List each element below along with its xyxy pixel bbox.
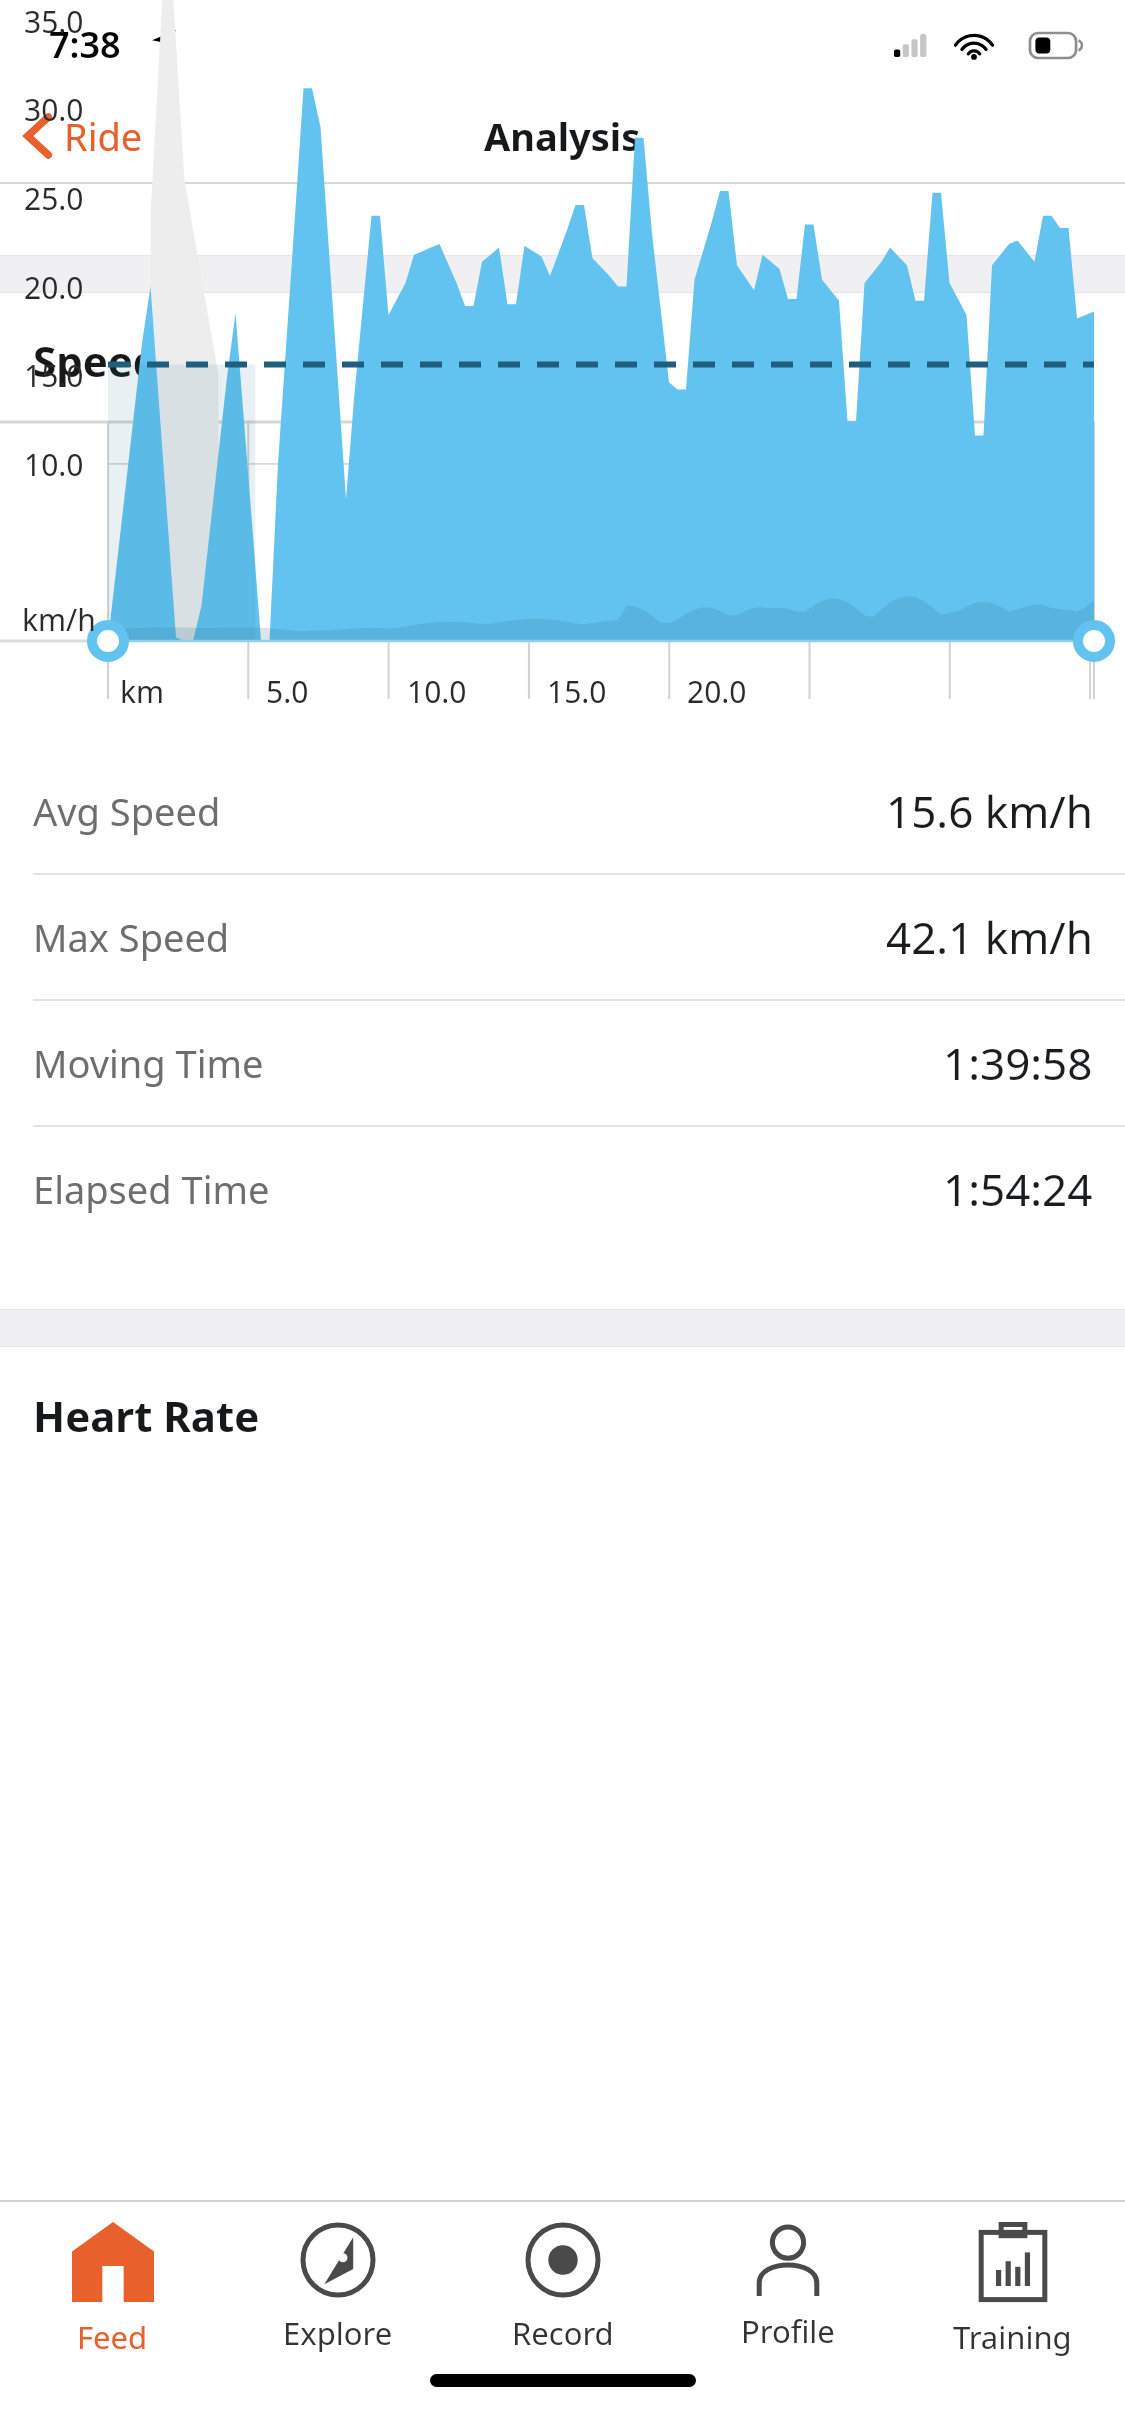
staticText: 10.0 [407, 671, 467, 712]
staticText: km/h [22, 599, 96, 640]
button[interactable]: Feed [0, 2202, 225, 2358]
staticText: 1:39:58 [943, 1033, 1093, 1093]
staticText: 35.0 [24, 1, 84, 42]
staticText: Profile [741, 2310, 835, 2352]
staticText: Feed [77, 2316, 148, 2358]
staticText: 7:38 [49, 20, 121, 69]
button[interactable]: Training [900, 2202, 1125, 2358]
button[interactable]: Avg Speed [0, 749, 1125, 873]
staticText: 25.0 [24, 178, 84, 219]
staticText: 1:54:24 [943, 1159, 1093, 1219]
button[interactable]: Record [450, 2202, 675, 2354]
staticText: 42.1 km/h [886, 907, 1093, 967]
staticText: 5.0 [266, 671, 309, 712]
staticText: 30.0 [24, 89, 84, 130]
staticText: 10.0 [24, 444, 84, 485]
staticText: Training [953, 2316, 1072, 2358]
button[interactable]: Explore [225, 2202, 450, 2354]
staticText: 20.0 [24, 267, 84, 308]
button[interactable]: Ride [0, 100, 163, 172]
staticText: Moving Time [33, 1037, 264, 1089]
button[interactable]: Elapsed Time [0, 1127, 1125, 1251]
staticText: Ride [64, 110, 143, 162]
staticText: Speed [33, 332, 160, 389]
button[interactable]: Max Speed [0, 875, 1125, 999]
other: Feed [72, 2222, 154, 2302]
staticText: 15.0 [547, 671, 607, 712]
other: Training [976, 2222, 1050, 2302]
other: Record [525, 2222, 601, 2298]
staticText: Explore [283, 2312, 393, 2354]
staticText: Avg Speed [33, 785, 221, 837]
staticText: 15.0 [24, 355, 84, 396]
staticText: Heart Rate [33, 1387, 260, 1444]
staticText: Max Speed [33, 911, 230, 963]
button[interactable]: Profile [675, 2202, 900, 2352]
other: Profile [748, 2222, 828, 2296]
staticText: Record [512, 2312, 614, 2354]
staticText: 15.6 km/h [886, 781, 1093, 841]
staticText: 20.0 [687, 671, 747, 712]
staticText: Elapsed Time [33, 1163, 270, 1215]
button[interactable]: Moving Time [0, 1001, 1125, 1125]
other: Explore [300, 2222, 376, 2298]
staticText: Analysis [484, 110, 641, 162]
staticText: km [120, 671, 165, 712]
